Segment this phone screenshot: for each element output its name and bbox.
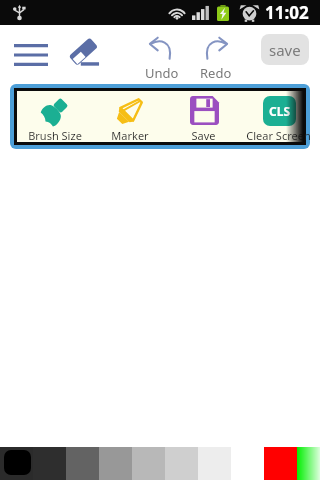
staticText: CLS [269, 103, 291, 119]
button[interactable]: Brush Size [17, 91, 92, 142]
button[interactable]: Save [166, 91, 241, 142]
staticText: Marker [111, 128, 149, 142]
staticText: save [269, 40, 301, 60]
button[interactable]: CLS [241, 91, 310, 142]
button[interactable]: Marker [92, 91, 167, 142]
staticText: Redo [200, 64, 232, 82]
staticText: Undo [145, 64, 179, 82]
button[interactable]: Eraser [58, 27, 110, 79]
button[interactable]: Redo [193, 36, 238, 82]
staticText: 11:02 [265, 1, 309, 24]
button[interactable]: Menu [4, 28, 58, 82]
other: USB connected [11, 4, 28, 21]
button[interactable]: save [261, 34, 309, 65]
button[interactable]: Undo [139, 36, 184, 82]
staticText: Clear Screen [246, 128, 310, 142]
button[interactable]: Black [0, 447, 33, 480]
staticText: Save [191, 128, 216, 142]
staticText: Brush Size [28, 128, 82, 142]
button[interactable]: Green [297, 447, 320, 480]
